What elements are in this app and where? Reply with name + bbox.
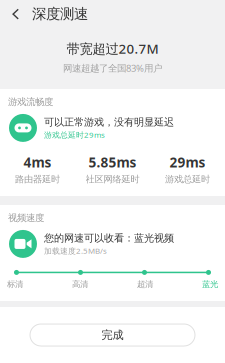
staticText: 蓝光 [202,279,218,289]
button[interactable]: Back [0,3,32,25]
staticText: 标清 [7,279,23,289]
staticText: 游戏流畅度 [8,96,53,108]
staticText: 社区网络延时 [85,173,139,185]
staticText: 深度测速 [32,5,88,23]
staticText: 29ms [169,153,205,171]
staticText: 路由器延时 [15,173,60,185]
staticText: 5.85ms [88,153,136,171]
staticText: 完成 [101,328,123,342]
staticText: 网速超越了全国83%用户 [63,62,162,74]
staticText: 4ms [23,153,51,171]
staticText: 加载速度2.5MB/s [44,245,107,256]
staticText: 游戏总延时 [165,173,210,185]
staticText: 超清 [137,279,153,289]
button[interactable]: 完成 [30,324,195,346]
staticText: 视频速度 [8,212,44,224]
staticText: 可以正常游戏，没有明显延迟 [44,116,174,128]
staticText: 游戏总延时29ms [44,129,105,140]
staticText: 带宽超过20.7M [66,39,158,58]
staticText: 您的网速可以收看：蓝光视频 [44,232,174,244]
staticText: 高清 [72,279,88,289]
